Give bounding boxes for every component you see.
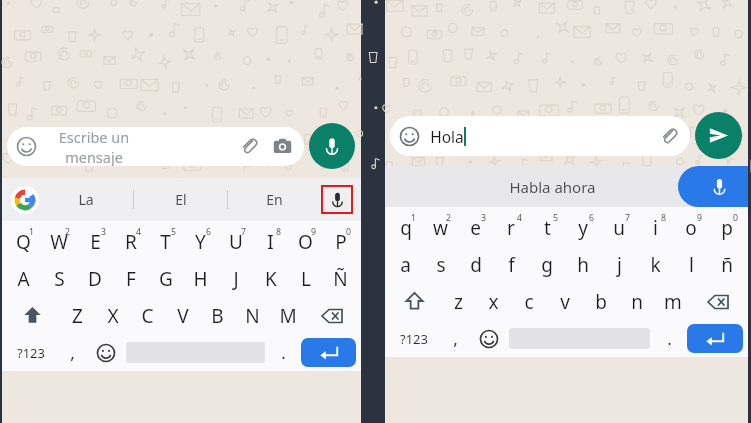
button[interactable]: o: [673, 209, 709, 246]
button[interactable]: V: [165, 297, 200, 334]
staticText: Q: [16, 229, 31, 255]
staticText: 1: [411, 212, 416, 224]
staticText: k: [650, 252, 661, 278]
button[interactable]: A: [5, 260, 41, 297]
button[interactable]: L: [288, 260, 323, 297]
button[interactable]: Ñ: [323, 260, 358, 297]
button[interactable]: s: [423, 246, 458, 283]
button[interactable]: ?123: [5, 334, 57, 371]
button[interactable]: .: [653, 320, 685, 357]
button[interactable]: j: [601, 246, 637, 283]
button[interactable]: l: [673, 246, 709, 283]
button[interactable]: U: [218, 223, 253, 260]
button[interactable]: T: [148, 223, 183, 260]
button[interactable]: Dictar por voz: [323, 187, 351, 212]
button[interactable]: El: [134, 178, 227, 221]
button[interactable]: B: [200, 297, 235, 334]
button[interactable]: t: [529, 209, 565, 246]
button[interactable]: M: [270, 297, 305, 334]
button[interactable]: ,: [57, 334, 88, 371]
button[interactable]: Shift: [388, 283, 441, 320]
button[interactable]: x: [476, 283, 511, 320]
button[interactable]: N: [235, 297, 270, 334]
button[interactable]: S: [41, 260, 77, 297]
staticText: 0: [733, 212, 738, 224]
staticText: u: [613, 215, 625, 241]
button[interactable]: y: [565, 209, 601, 246]
button[interactable]: Z: [59, 297, 95, 334]
button[interactable]: Google: [11, 186, 39, 214]
button[interactable]: La: [39, 178, 133, 221]
button[interactable]: e: [458, 209, 493, 246]
staticText: x: [488, 289, 499, 315]
button[interactable]: n: [619, 283, 655, 320]
button[interactable]: Enviar: [695, 112, 742, 159]
button[interactable]: ?123: [388, 320, 440, 357]
button[interactable]: E: [77, 223, 113, 260]
button[interactable]: Y: [183, 223, 218, 260]
button[interactable]: Hola: [390, 116, 690, 156]
button[interactable]: Backspace: [691, 283, 745, 320]
button[interactable]: D: [77, 260, 113, 297]
staticText: I: [267, 229, 274, 255]
button[interactable]: i: [637, 209, 673, 246]
button[interactable]: Backspace: [305, 297, 358, 334]
button[interactable]: G: [148, 260, 183, 297]
button[interactable]: z: [441, 283, 476, 320]
button[interactable]: h: [565, 246, 601, 283]
button[interactable]: X: [95, 297, 130, 334]
button[interactable]: f: [493, 246, 529, 283]
button[interactable]: Micrófono: [678, 166, 748, 207]
button[interactable]: W: [41, 223, 77, 260]
button[interactable]: Shift: [5, 297, 59, 334]
button[interactable]: I: [253, 223, 288, 260]
button[interactable]: En: [228, 178, 321, 221]
staticText: M: [279, 303, 297, 329]
staticText: g: [541, 252, 553, 278]
button[interactable]: K: [253, 260, 288, 297]
button[interactable]: b: [583, 283, 619, 320]
button[interactable]: Enter: [687, 324, 743, 353]
button[interactable]: ,: [440, 320, 471, 357]
button[interactable]: Emoji: [88, 334, 123, 371]
staticText: R: [125, 229, 137, 255]
button[interactable]: Q: [5, 223, 41, 260]
button[interactable]: C: [130, 297, 165, 334]
button[interactable]: k: [637, 246, 673, 283]
button[interactable]: r: [493, 209, 529, 246]
button[interactable]: ñ: [709, 246, 745, 283]
button[interactable]: J: [218, 260, 253, 297]
button[interactable]: v: [547, 283, 583, 320]
button[interactable]: P: [323, 223, 358, 260]
button[interactable]: Grabar audio: [309, 123, 355, 169]
button[interactable]: Enter: [301, 338, 356, 367]
staticText: ?123: [400, 330, 428, 348]
staticText: a: [400, 252, 411, 278]
staticText: 6: [589, 212, 594, 224]
button[interactable]: g: [529, 246, 565, 283]
button[interactable]: c: [511, 283, 547, 320]
button[interactable]: a: [388, 246, 423, 283]
button[interactable]: w: [423, 209, 458, 246]
button[interactable]: Emoji: [471, 320, 506, 357]
staticText: S: [54, 266, 65, 292]
button[interactable]: F: [113, 260, 148, 297]
staticText: La: [78, 190, 94, 209]
staticText: T: [160, 229, 171, 255]
button[interactable]: .: [268, 334, 299, 371]
button[interactable]: u: [601, 209, 637, 246]
button[interactable]: m: [655, 283, 691, 320]
button[interactable]: Escribe un mensaje: [7, 127, 304, 166]
button[interactable]: O: [288, 223, 323, 260]
staticText: 5: [553, 212, 558, 224]
button[interactable]: R: [113, 223, 148, 260]
button[interactable]: H: [183, 260, 218, 297]
staticText: G: [159, 266, 173, 292]
staticText: Habla ahora: [509, 177, 596, 197]
button[interactable]: d: [458, 246, 493, 283]
button[interactable]: p: [709, 209, 745, 246]
button[interactable]: q: [388, 209, 423, 246]
staticText: E: [90, 229, 101, 255]
